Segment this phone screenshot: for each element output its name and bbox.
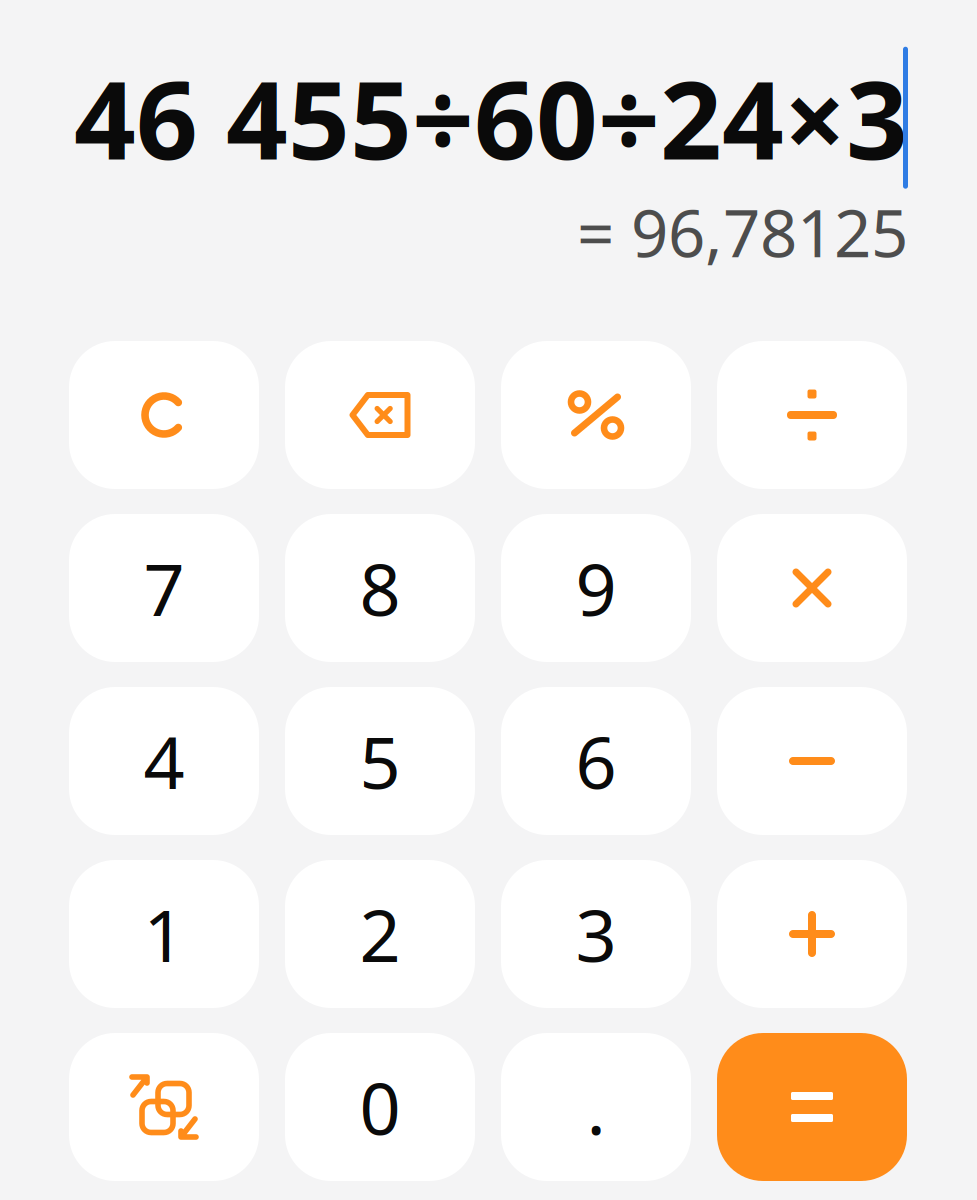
button[interactable]: 0 <box>285 1033 475 1181</box>
button[interactable]: 5 <box>285 687 475 835</box>
button[interactable]: Equals <box>717 1033 907 1181</box>
staticText: 4 <box>143 713 184 809</box>
button[interactable]: 4 <box>69 687 259 835</box>
staticText: 46 455÷60÷24×3 <box>74 46 908 189</box>
button[interactable]: 9 <box>501 514 691 662</box>
button[interactable]: Percent <box>501 341 691 489</box>
staticText: 2 <box>359 886 400 982</box>
button[interactable]: Unit converter <box>69 1033 259 1181</box>
button[interactable]: 3 <box>501 860 691 1008</box>
button[interactable]: Backspace <box>285 341 475 489</box>
staticText: 9 <box>575 540 616 636</box>
button[interactable]: 8 <box>285 514 475 662</box>
staticText: . <box>586 1059 605 1155</box>
staticText: 6 <box>575 713 616 809</box>
button[interactable]: Plus <box>717 860 907 1008</box>
button[interactable]: Minus <box>717 687 907 835</box>
button[interactable]: Clear <box>69 341 259 489</box>
staticText: 5 <box>359 713 400 809</box>
button[interactable]: 1 <box>69 860 259 1008</box>
button[interactable]: 2 <box>285 860 475 1008</box>
staticText: 0 <box>359 1059 400 1155</box>
staticText: = 96,78125 <box>577 188 908 275</box>
button[interactable]: Multiply <box>717 514 907 662</box>
button[interactable]: Decimal point <box>501 1033 691 1181</box>
button[interactable]: Divide <box>717 341 907 489</box>
button[interactable]: 7 <box>69 514 259 662</box>
button[interactable]: 6 <box>501 687 691 835</box>
staticText: 1 <box>143 886 184 982</box>
staticText: 7 <box>143 540 184 636</box>
staticText: 8 <box>359 540 400 636</box>
staticText: 3 <box>575 886 616 982</box>
